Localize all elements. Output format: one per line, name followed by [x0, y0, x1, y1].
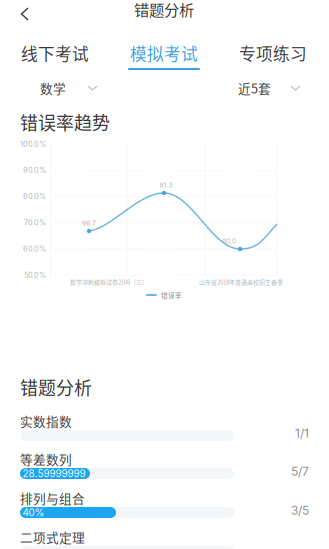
- staticText: 70.0%: [24, 218, 46, 227]
- staticText: 66.7: [82, 219, 96, 227]
- staticText: 60.0: [222, 237, 236, 245]
- staticText: 错误率趋势: [20, 109, 110, 135]
- button[interactable]: 近5套: [238, 76, 301, 100]
- staticText: 90.0%: [23, 166, 46, 175]
- button[interactable]: 排列与组合: [20, 491, 309, 524]
- button[interactable]: 数学: [40, 76, 98, 100]
- staticText: 近5套: [238, 79, 271, 97]
- staticText: 错误率: [161, 290, 182, 300]
- staticText: 错题分析: [134, 0, 194, 20]
- staticText: 28.59999999: [22, 467, 85, 480]
- button[interactable]: 模拟考试: [114, 35, 214, 75]
- button[interactable]: 专项练习: [223, 35, 323, 75]
- staticText: 50.0%: [24, 271, 46, 279]
- staticText: 错题分析: [20, 374, 92, 400]
- staticText: 山东省2018年普通高校招生春季: [199, 278, 283, 286]
- staticText: 数学冲刺模拟试卷2106（三）: [70, 278, 148, 286]
- staticText: 等差数列: [20, 450, 72, 468]
- staticText: 80.0%: [23, 192, 46, 201]
- button[interactable]: 实数指数: [20, 414, 309, 447]
- staticText: 数学: [40, 79, 66, 97]
- button[interactable]: 返回: [8, 0, 42, 28]
- staticText: 1/1: [295, 426, 309, 441]
- staticText: 81.3: [159, 181, 172, 189]
- staticText: 5/7: [291, 464, 309, 479]
- staticText: 专项练习: [239, 41, 307, 65]
- staticText: 模拟考试: [130, 41, 198, 65]
- staticText: 40%: [22, 506, 44, 519]
- staticText: 3/5: [291, 503, 309, 518]
- button[interactable]: 等差数列: [20, 452, 309, 485]
- button[interactable]: 线下考试: [5, 35, 105, 75]
- staticText: 实数指数: [20, 412, 72, 430]
- staticText: 线下考试: [21, 41, 89, 65]
- staticText: 100.0%: [20, 140, 46, 148]
- staticText: 排列与组合: [20, 489, 85, 507]
- staticText: 60.0%: [23, 244, 46, 253]
- staticText: 二项式定理: [20, 528, 85, 546]
- button[interactable]: 二项式定理: [20, 530, 309, 549]
